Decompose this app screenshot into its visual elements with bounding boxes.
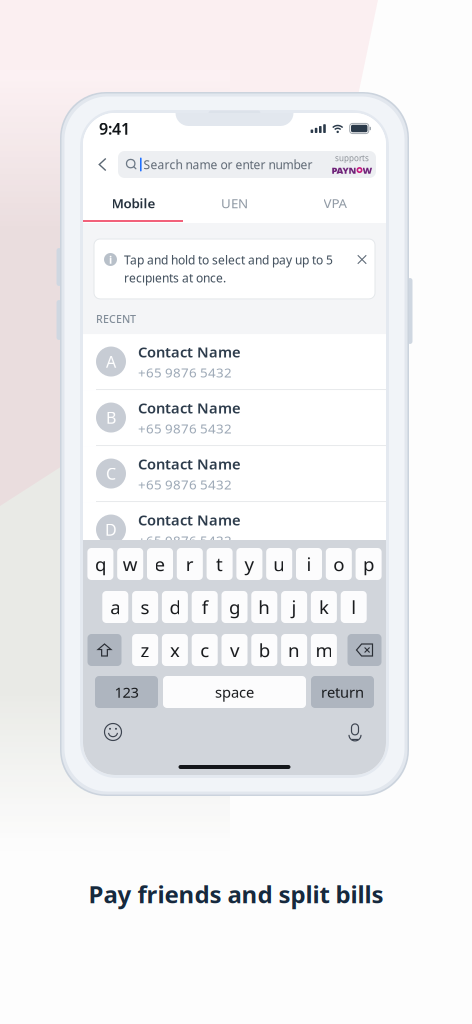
staticText: d: [169, 595, 180, 619]
staticText: C: [106, 463, 116, 484]
staticText: w: [123, 552, 138, 576]
button[interactable]: g: [221, 591, 247, 623]
staticText: +65 9876 5432: [138, 363, 232, 381]
staticText: v: [230, 638, 239, 662]
button[interactable]: 123: [95, 676, 158, 708]
button[interactable]: Emoji: [96, 720, 130, 744]
button[interactable]: x: [162, 634, 188, 666]
button[interactable]: z: [132, 634, 158, 666]
staticText: q: [95, 552, 106, 576]
button[interactable]: f: [192, 591, 218, 623]
staticText: PAYN: [331, 164, 356, 176]
staticText: W: [363, 164, 373, 176]
button[interactable]: w: [117, 548, 143, 580]
staticText: j: [292, 595, 297, 619]
staticText: Tap and hold to select and pay up to 5: [124, 252, 333, 268]
button[interactable]: d: [162, 591, 188, 623]
staticText: t: [216, 552, 223, 576]
staticText: UEN: [221, 194, 248, 212]
staticText: Pay friends and split bills: [88, 878, 383, 910]
staticText: return: [321, 682, 364, 702]
staticText: recipients at once.: [124, 270, 226, 286]
button[interactable]: e: [147, 548, 173, 580]
staticText: B: [106, 407, 116, 428]
staticText: Contact Name: [138, 510, 241, 529]
staticText: a: [110, 595, 120, 619]
staticText: s: [141, 595, 150, 619]
button[interactable]: B: [83, 390, 386, 446]
button[interactable]: p: [356, 548, 382, 580]
staticText: n: [288, 638, 300, 662]
staticText: i: [306, 552, 311, 576]
staticText: RECENT: [96, 312, 136, 326]
button[interactable]: l: [341, 591, 367, 623]
staticText: u: [273, 552, 285, 576]
staticText: Search name or enter number: [144, 156, 313, 172]
button[interactable]: i: [296, 548, 322, 580]
staticText: f: [202, 595, 208, 619]
staticText: o: [333, 552, 344, 576]
button[interactable]: Dictation: [338, 720, 372, 744]
button[interactable]: Dismiss: [354, 251, 370, 267]
button[interactable]: space: [163, 676, 306, 708]
staticText: D: [105, 519, 117, 540]
button[interactable]: r: [177, 548, 203, 580]
button[interactable]: C: [83, 446, 386, 502]
staticText: g: [229, 595, 240, 619]
staticText: h: [258, 595, 270, 619]
staticText: c: [200, 638, 209, 662]
button[interactable]: t: [207, 548, 233, 580]
button[interactable]: u: [266, 548, 292, 580]
staticText: +65 9876 5432: [138, 475, 232, 493]
staticText: y: [244, 552, 254, 576]
staticText: 123: [114, 682, 138, 702]
button[interactable]: a: [102, 591, 128, 623]
staticText: Contact Name: [138, 398, 241, 417]
button[interactable]: b: [251, 634, 277, 666]
staticText: l: [351, 595, 356, 619]
button[interactable]: k: [311, 591, 337, 623]
button[interactable]: s: [132, 591, 158, 623]
staticText: k: [319, 595, 329, 619]
button[interactable]: n: [281, 634, 307, 666]
button[interactable]: q: [87, 548, 113, 580]
button[interactable]: VPA: [285, 186, 386, 220]
staticText: Mobile: [111, 194, 155, 212]
staticText: VPA: [323, 194, 347, 212]
button[interactable]: UEN: [184, 186, 285, 220]
staticText: m: [315, 638, 332, 662]
button[interactable]: h: [251, 591, 277, 623]
staticText: supports: [335, 153, 369, 163]
staticText: x: [170, 638, 180, 662]
button[interactable]: A: [83, 334, 386, 390]
button[interactable]: Delete: [347, 634, 381, 666]
staticText: z: [141, 638, 150, 662]
button[interactable]: v: [221, 634, 247, 666]
staticText: A: [106, 351, 116, 372]
button[interactable]: y: [236, 548, 262, 580]
staticText: space: [215, 682, 254, 702]
button[interactable]: j: [281, 591, 307, 623]
button[interactable]: o: [326, 548, 352, 580]
staticText: b: [259, 638, 270, 662]
staticText: +65 9876 5432: [138, 419, 232, 437]
button[interactable]: Shift: [87, 634, 121, 666]
staticText: Contact Name: [138, 454, 241, 473]
staticText: 9:41: [99, 118, 130, 139]
button[interactable]: c: [192, 634, 218, 666]
staticText: +65 9876 5432: [138, 531, 232, 549]
button[interactable]: m: [311, 634, 337, 666]
staticText: i: [109, 252, 112, 267]
button[interactable]: D: [83, 502, 386, 558]
button[interactable]: Back: [87, 150, 118, 178]
button[interactable]: return: [311, 676, 374, 708]
staticText: p: [363, 552, 374, 576]
staticText: e: [154, 552, 165, 576]
staticText: Contact Name: [138, 342, 241, 361]
button[interactable]: Mobile: [83, 186, 184, 220]
staticText: r: [186, 552, 194, 576]
